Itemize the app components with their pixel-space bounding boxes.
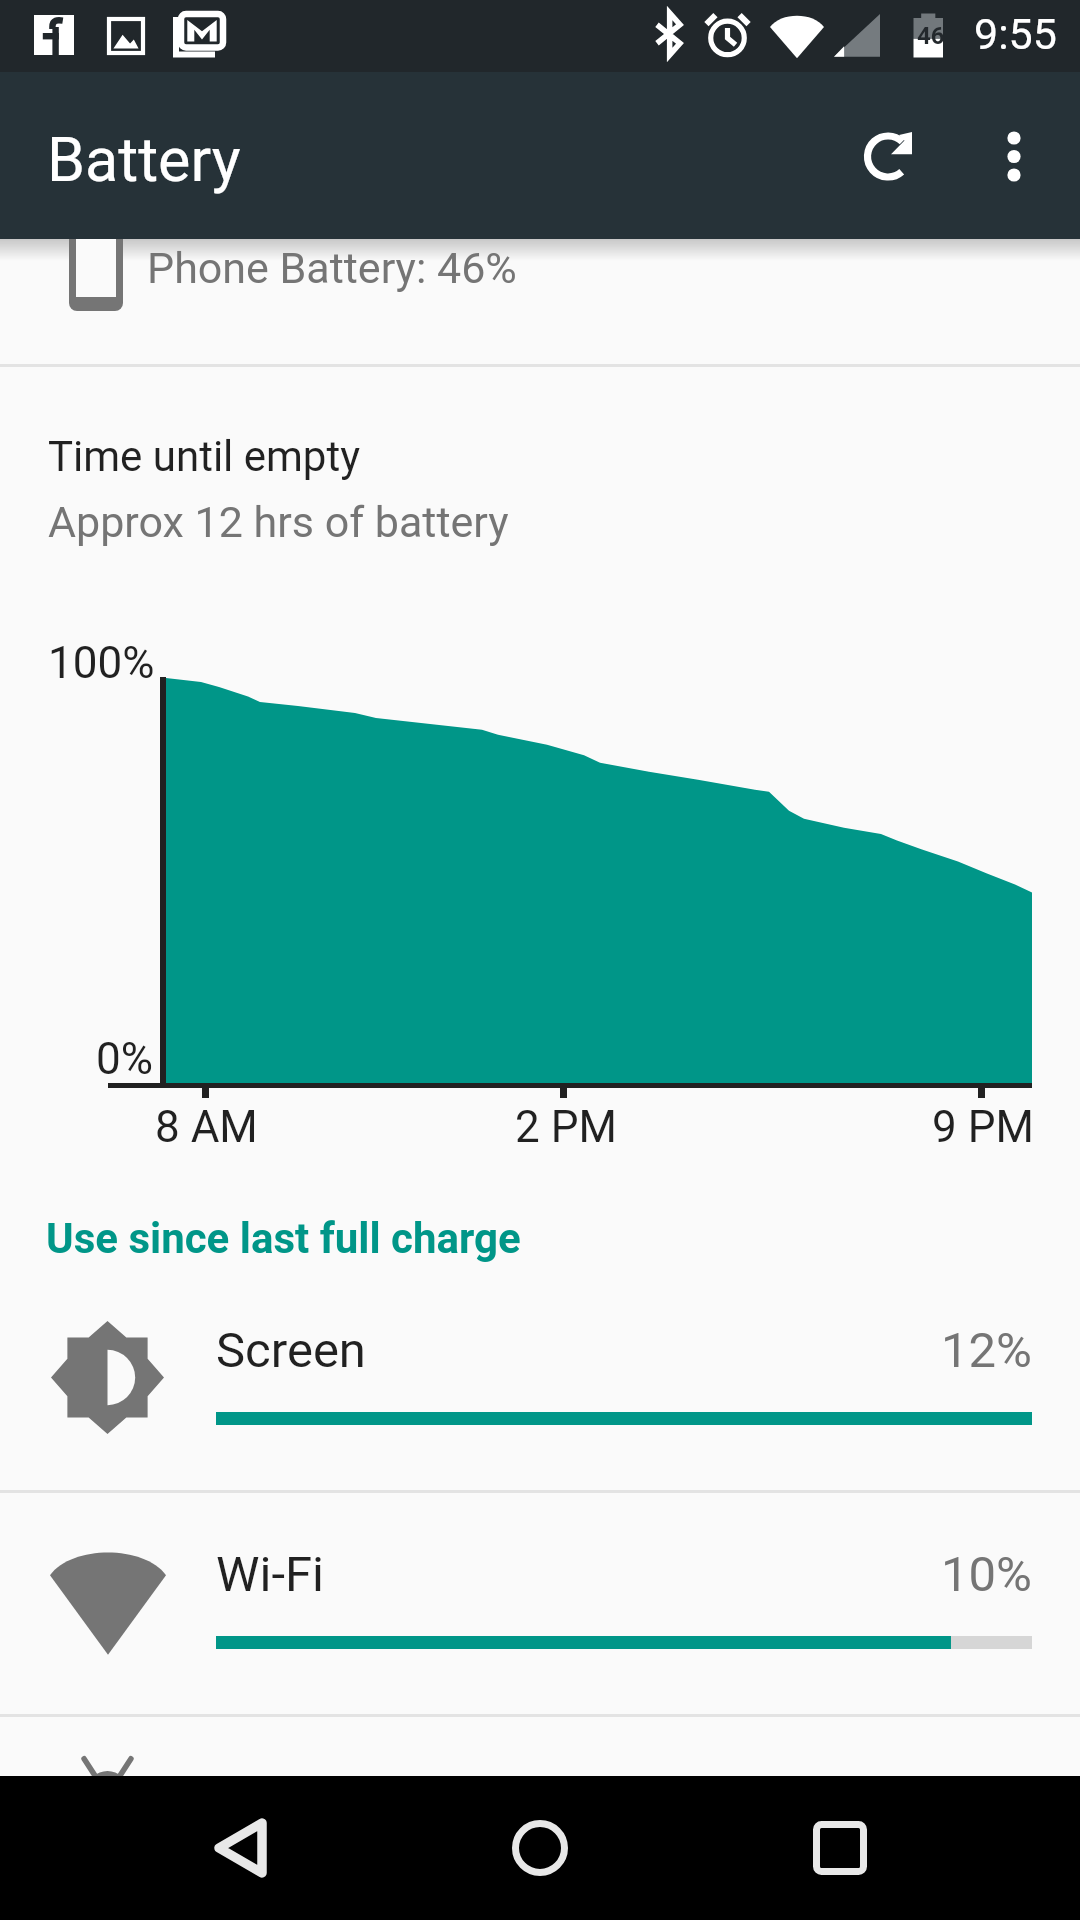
staticText: 12% [941,1322,1032,1379]
staticText: Use since last full charge [46,1214,521,1263]
staticText: 9:55 [974,9,1057,59]
button[interactable]: Home [470,1776,610,1920]
staticText: 0% [96,1033,153,1085]
staticText: 8 AM [155,1101,258,1153]
staticText: Screen [216,1322,366,1379]
button[interactable]: Refresh [838,111,938,211]
staticText: Wi-Fi [216,1546,324,1603]
staticText: 9 PM [932,1101,1034,1153]
staticText: 100% [48,637,155,689]
button[interactable]: Recent apps [770,1776,910,1920]
staticText: 2 PM [515,1101,617,1153]
staticText: Phone Battery: 46% [147,243,517,293]
staticText: 46 [917,22,945,50]
button[interactable]: Wi-Fi [0,1524,1080,1713]
staticText: Battery [47,124,241,195]
button[interactable]: More options [964,111,1064,211]
button[interactable]: Phone Battery: 46% [0,239,1080,364]
button[interactable] [0,1717,1080,1776]
staticText: Approx 12 hrs of battery [48,497,509,547]
button[interactable]: Screen [0,1300,1080,1489]
staticText: Time until empty [48,432,361,481]
staticText: 10% [941,1546,1032,1603]
